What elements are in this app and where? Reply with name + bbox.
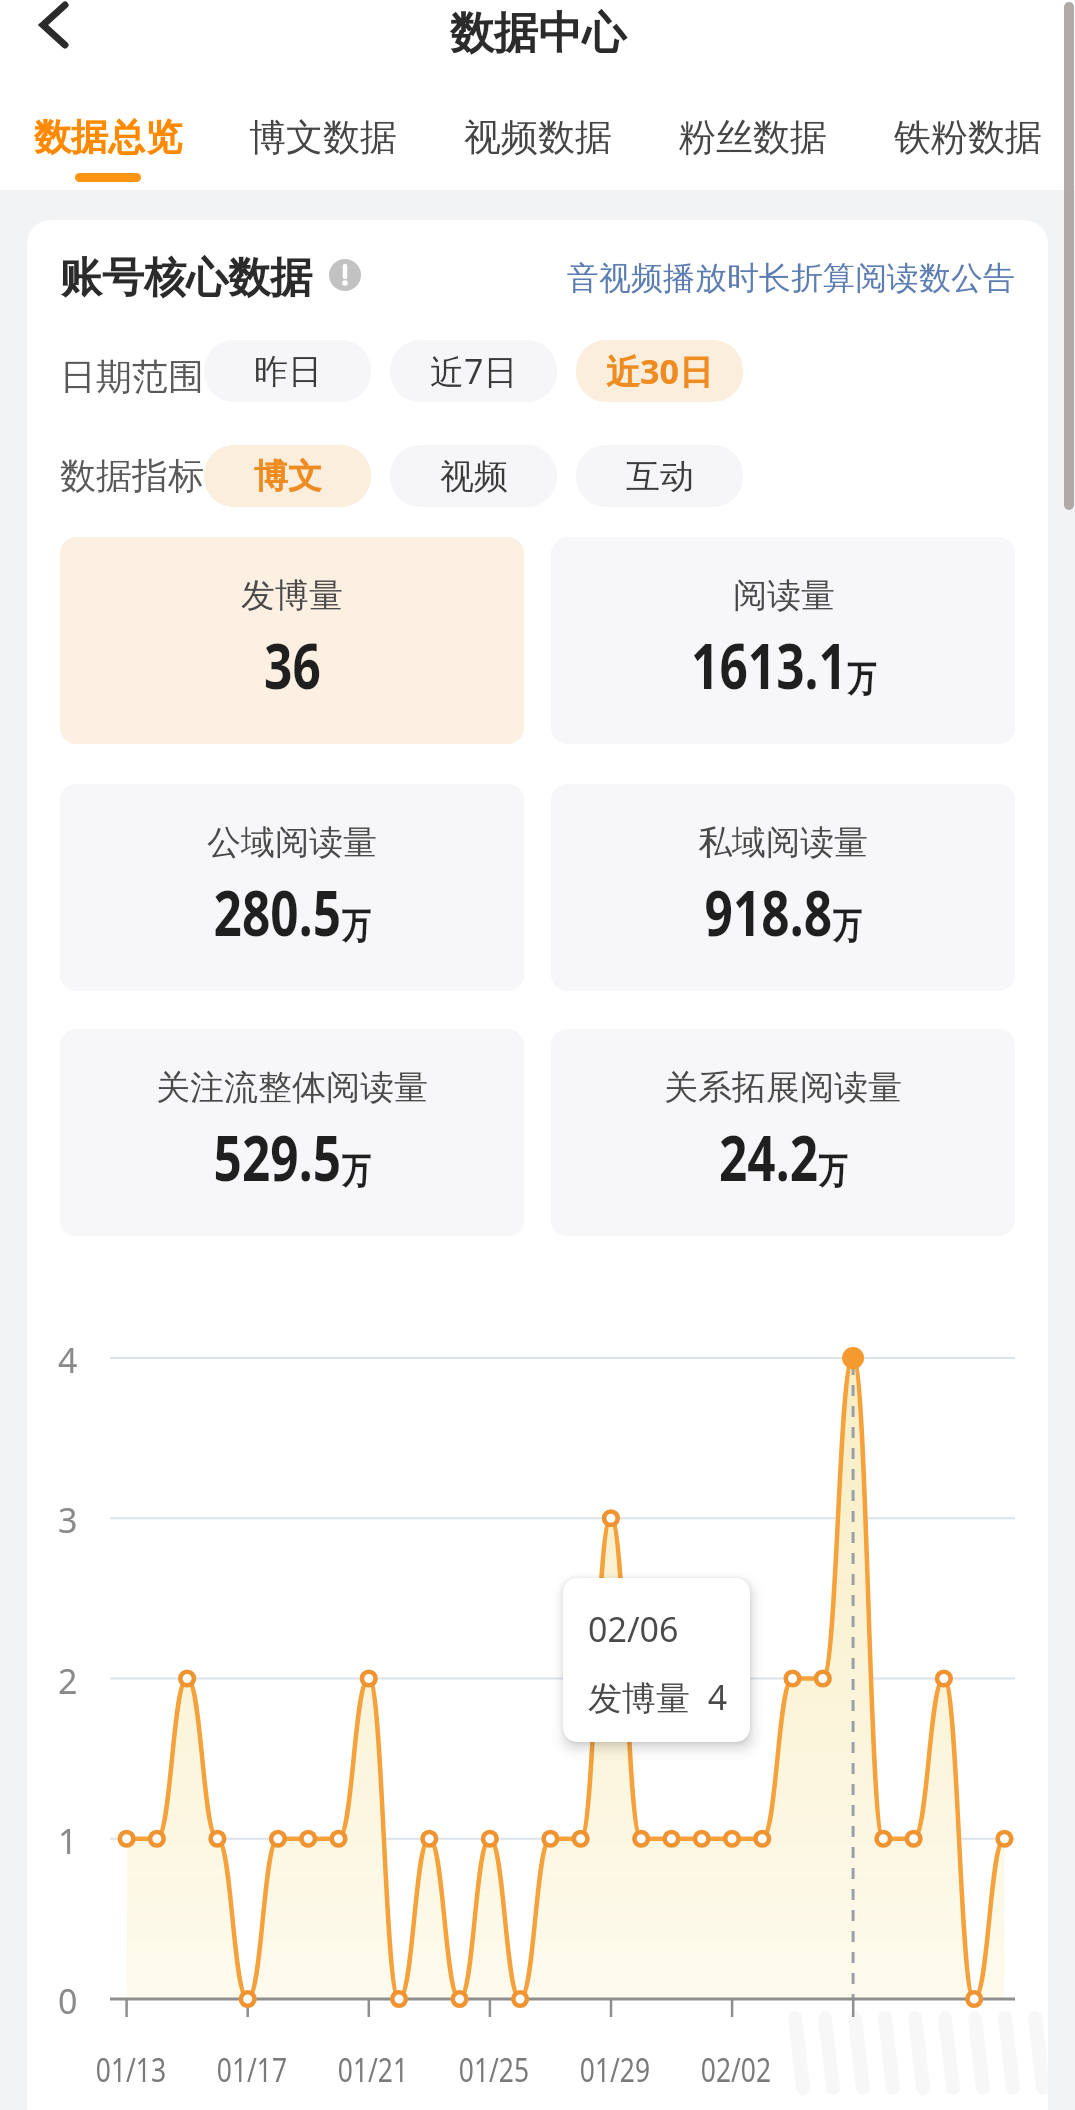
- button[interactable]: 私域阅读量: [551, 784, 1015, 991]
- button[interactable]: 发博量: [60, 537, 524, 744]
- button[interactable]: 昨日: [204, 340, 371, 402]
- button[interactable]: 近30日: [576, 340, 743, 402]
- button[interactable]: [10, 0, 100, 56]
- staticText: 数据总览: [34, 114, 182, 161]
- staticText: 02/06: [588, 1606, 679, 1652]
- staticText: 280.5: [214, 870, 342, 954]
- button[interactable]: 音视频播放时长折算阅读数公告: [427, 258, 1015, 298]
- staticText: 近7日: [430, 348, 518, 394]
- staticText: 近30日: [606, 348, 713, 394]
- staticText: 账号核心数据: [60, 252, 312, 305]
- staticText: 昨日: [254, 350, 322, 393]
- button[interactable]: 近7日: [390, 340, 557, 402]
- staticText: 1613.1: [691, 623, 847, 707]
- button[interactable]: 互动: [576, 445, 743, 507]
- staticText: 关系拓展阅读量: [664, 1066, 902, 1109]
- button[interactable]: 博文数据: [215, 90, 430, 190]
- staticText: 数据指标: [60, 453, 204, 498]
- staticText: 02/02: [701, 2047, 771, 2092]
- staticText: 24.2: [719, 1115, 818, 1199]
- button[interactable]: 公域阅读量: [60, 784, 524, 991]
- staticText: 发博量 4: [588, 1674, 728, 1720]
- staticText: 36: [264, 623, 321, 707]
- button[interactable]: 视频数据: [430, 90, 645, 190]
- button[interactable]: 阅读量: [551, 537, 1015, 744]
- staticText: 万: [342, 1148, 370, 1193]
- staticText: 万: [342, 903, 370, 948]
- button[interactable]: 粉丝数据: [645, 90, 860, 190]
- staticText: 博文数据: [249, 114, 397, 161]
- staticText: 01/17: [217, 2047, 287, 2092]
- staticText: 0: [58, 1978, 78, 2024]
- staticText: 01/25: [459, 2047, 529, 2092]
- staticText: 视频数据: [464, 114, 612, 161]
- staticText: 数据中心: [450, 6, 626, 61]
- staticText: 互动: [626, 455, 694, 498]
- staticText: 01/29: [580, 2047, 650, 2092]
- button[interactable]: 关系拓展阅读量: [551, 1029, 1015, 1236]
- staticText: 万: [847, 656, 876, 701]
- staticText: 日期范围: [60, 354, 204, 399]
- staticText: 粉丝数据: [679, 114, 827, 161]
- button[interactable]: 视频: [390, 445, 557, 507]
- staticText: 博文: [254, 455, 322, 498]
- staticText: 阅读量: [733, 574, 835, 617]
- staticText: 万: [818, 1148, 847, 1193]
- staticText: 公域阅读量: [207, 821, 377, 864]
- staticText: 01/21: [338, 2047, 408, 2092]
- button[interactable]: 数据总览: [0, 90, 215, 190]
- staticText: 3: [58, 1497, 78, 1543]
- staticText: 关注流整体阅读量: [156, 1066, 428, 1109]
- staticText: 私域阅读量: [698, 821, 868, 864]
- button[interactable]: 博文: [204, 445, 371, 507]
- staticText: 529.5: [214, 1115, 342, 1199]
- staticText: 视频: [440, 455, 508, 498]
- button[interactable]: 铁粉数据: [860, 90, 1075, 190]
- staticText: 01/13: [96, 2047, 166, 2092]
- staticText: 918.8: [705, 870, 833, 954]
- staticText: 发博量: [241, 574, 343, 617]
- button[interactable]: 关注流整体阅读量: [60, 1029, 524, 1236]
- staticText: 万: [833, 903, 861, 948]
- staticText: 2: [58, 1658, 78, 1704]
- staticText: 铁粉数据: [894, 114, 1042, 161]
- staticText: 4: [58, 1337, 78, 1383]
- staticText: 音视频播放时长折算阅读数公告: [567, 258, 1015, 298]
- staticText: 1: [58, 1818, 78, 1864]
